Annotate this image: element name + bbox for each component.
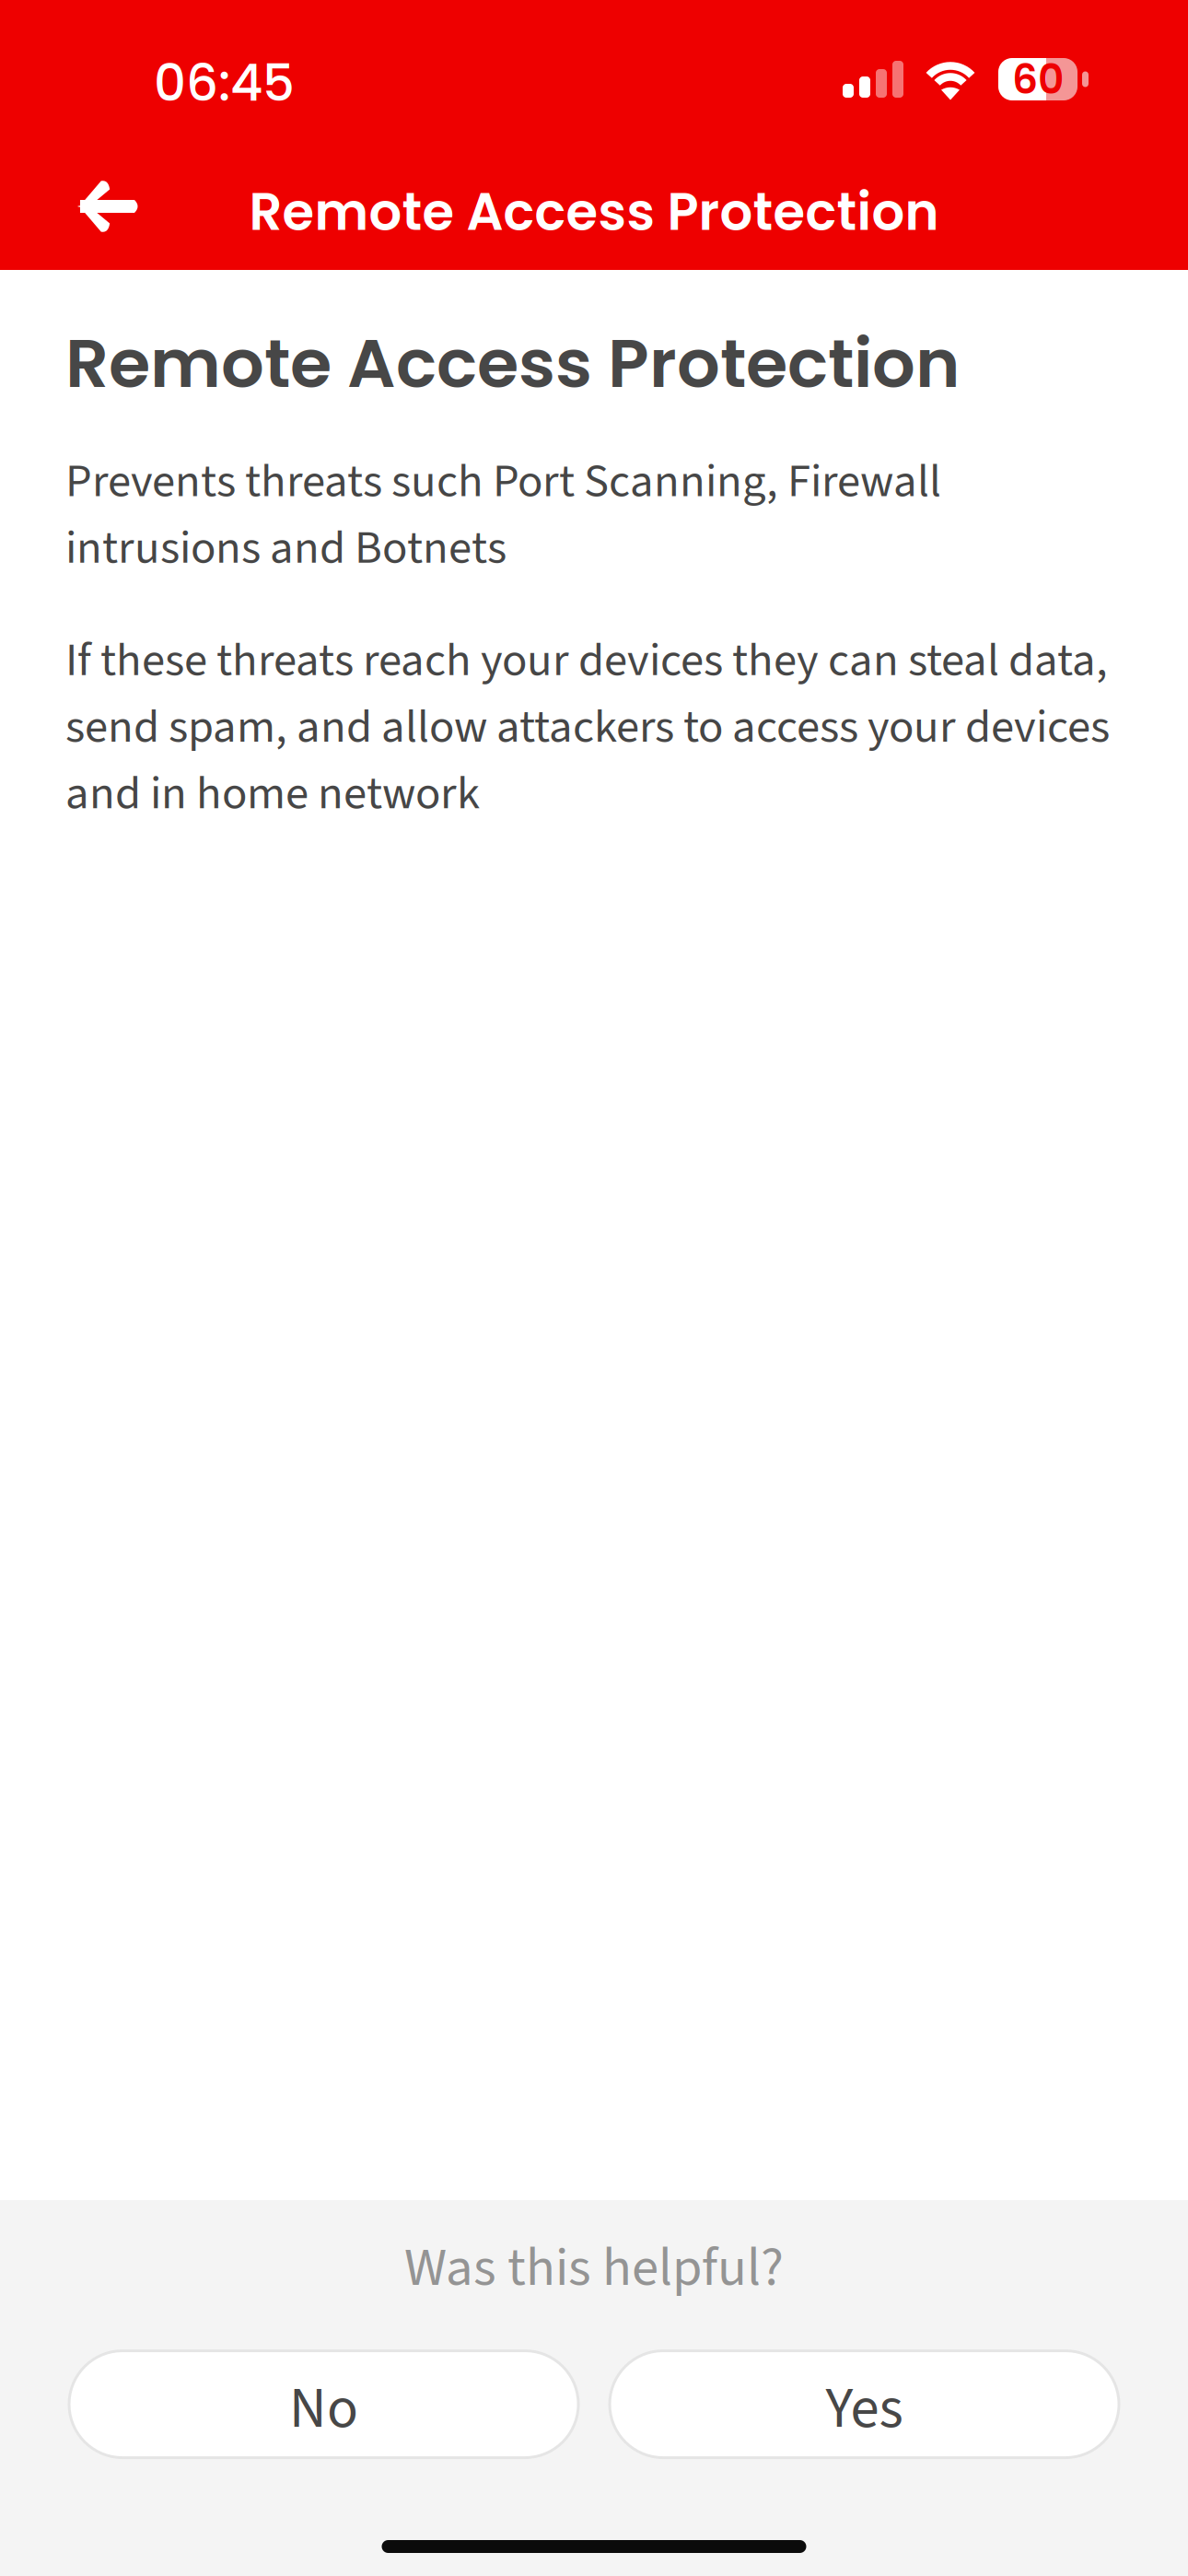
staticText: 06:45	[154, 48, 295, 118]
button[interactable]: No	[69, 2351, 578, 2458]
staticText: Remote Access Protection	[249, 176, 939, 248]
button[interactable]: Back	[0, 151, 181, 268]
staticText: 60	[1012, 51, 1064, 108]
staticText: Prevents threats such Port Scanning, Fir…	[65, 448, 941, 581]
staticText: If these threats reach your devices they…	[65, 627, 1110, 827]
button[interactable]: Yes	[610, 2351, 1119, 2458]
staticText: Was this helpful?	[404, 2230, 784, 2307]
staticText: Remote Access Protection	[65, 316, 960, 411]
staticText: No	[289, 2368, 358, 2450]
staticText: Yes	[826, 2368, 903, 2450]
